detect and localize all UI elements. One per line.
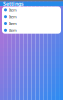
staticText: Settings: [3, 0, 24, 7]
staticText: Item: [9, 21, 17, 26]
staticText: Item: [9, 14, 17, 19]
staticText: Item: [9, 28, 17, 33]
staticText: Item: [9, 7, 17, 12]
